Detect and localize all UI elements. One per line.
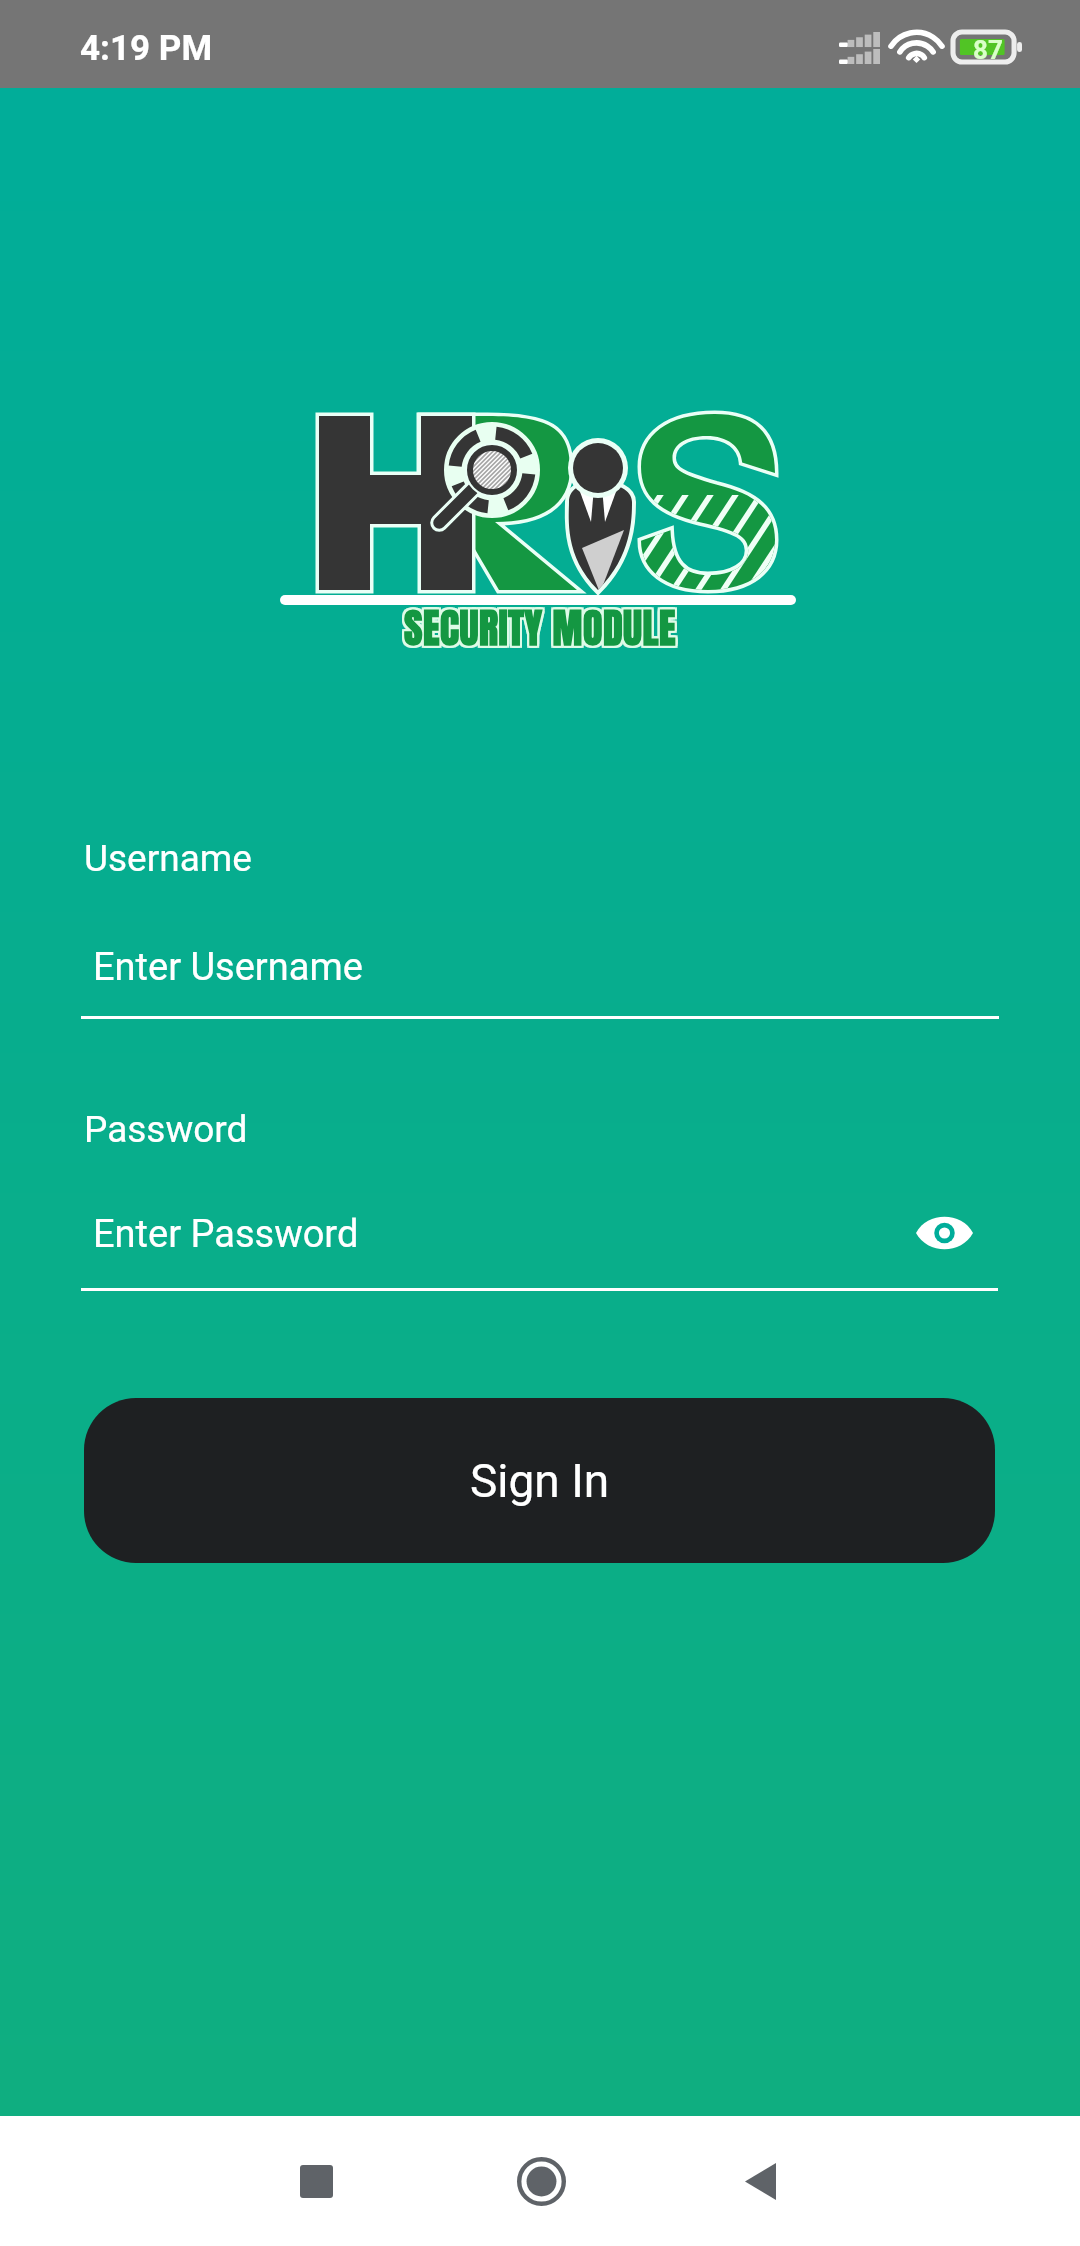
staticText: SECURITY MODULE	[404, 596, 676, 656]
staticText: SECURITY MODULE	[404, 600, 676, 660]
button[interactable]: Show password	[902, 1200, 986, 1266]
staticText: Enter Username	[93, 945, 363, 990]
staticText: Password	[84, 1108, 248, 1151]
button[interactable]: Sign In	[84, 1398, 995, 1563]
staticText: SECURITY MODULE	[402, 600, 674, 660]
staticText: SECURITY MODULE	[402, 596, 674, 656]
staticText: Username	[84, 837, 252, 880]
button[interactable]: Enter Username	[81, 928, 999, 1019]
button[interactable]: Enter Password	[81, 1195, 998, 1291]
button[interactable]: Recents	[246, 2116, 386, 2246]
staticText: SECURITY MODULE	[406, 598, 678, 658]
staticText: SECURITY MODULE	[402, 598, 674, 658]
staticText: 4:19 PM	[80, 28, 213, 69]
staticText: SECURITY MODULE	[406, 596, 678, 656]
staticText: SECURITY MODULE	[404, 598, 676, 658]
button[interactable]: Back	[690, 2116, 830, 2246]
staticText: Enter Password	[93, 1212, 359, 1257]
staticText: SECURITY MODULE	[406, 600, 678, 660]
button[interactable]: Home	[471, 2116, 611, 2246]
staticText: 87	[973, 35, 1003, 65]
staticText: Sign In	[470, 1454, 610, 1508]
